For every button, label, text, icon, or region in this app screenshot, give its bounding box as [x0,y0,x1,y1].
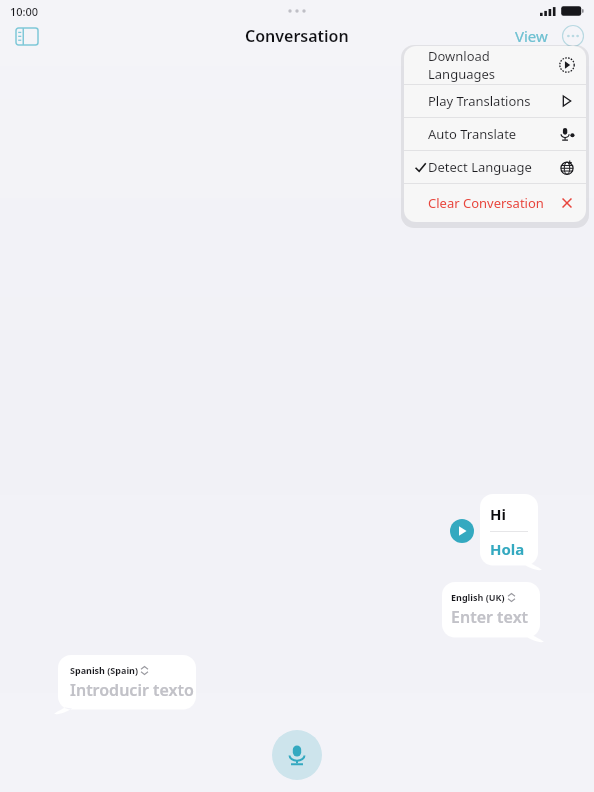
button[interactable]: English (UK) [451,591,515,603]
staticText: 10:00 [10,4,39,19]
staticText: Enter text [451,606,529,628]
staticText: Auto Translate [428,125,559,143]
staticText: Hola [490,539,525,559]
staticText: View [515,26,548,46]
button[interactable]: More options [560,23,586,49]
button[interactable]: Spanish (Spain) [70,664,148,676]
button[interactable]: Download Languages [404,46,586,84]
button[interactable]: Clear Conversation [404,184,586,222]
button[interactable]: Show sidebar [10,19,44,53]
staticText: Hi [490,504,506,524]
button[interactable]: Detect Language [404,151,586,183]
staticText: Spanish (Spain) [70,664,138,676]
button[interactable]: Auto Translate [404,118,586,150]
staticText: Detect Language [428,158,559,176]
staticText: Introducir texto [70,679,194,701]
button[interactable]: View [509,22,554,50]
staticText: English (UK) [451,591,505,603]
staticText: Download Languages [428,47,559,83]
button[interactable]: Play Translations [404,85,586,117]
button[interactable]: Play translation [450,519,474,543]
staticText: Conversation [245,25,349,47]
button[interactable]: Record speech [272,730,322,780]
staticText: Clear Conversation [428,194,559,212]
staticText: Play Translations [428,92,559,110]
